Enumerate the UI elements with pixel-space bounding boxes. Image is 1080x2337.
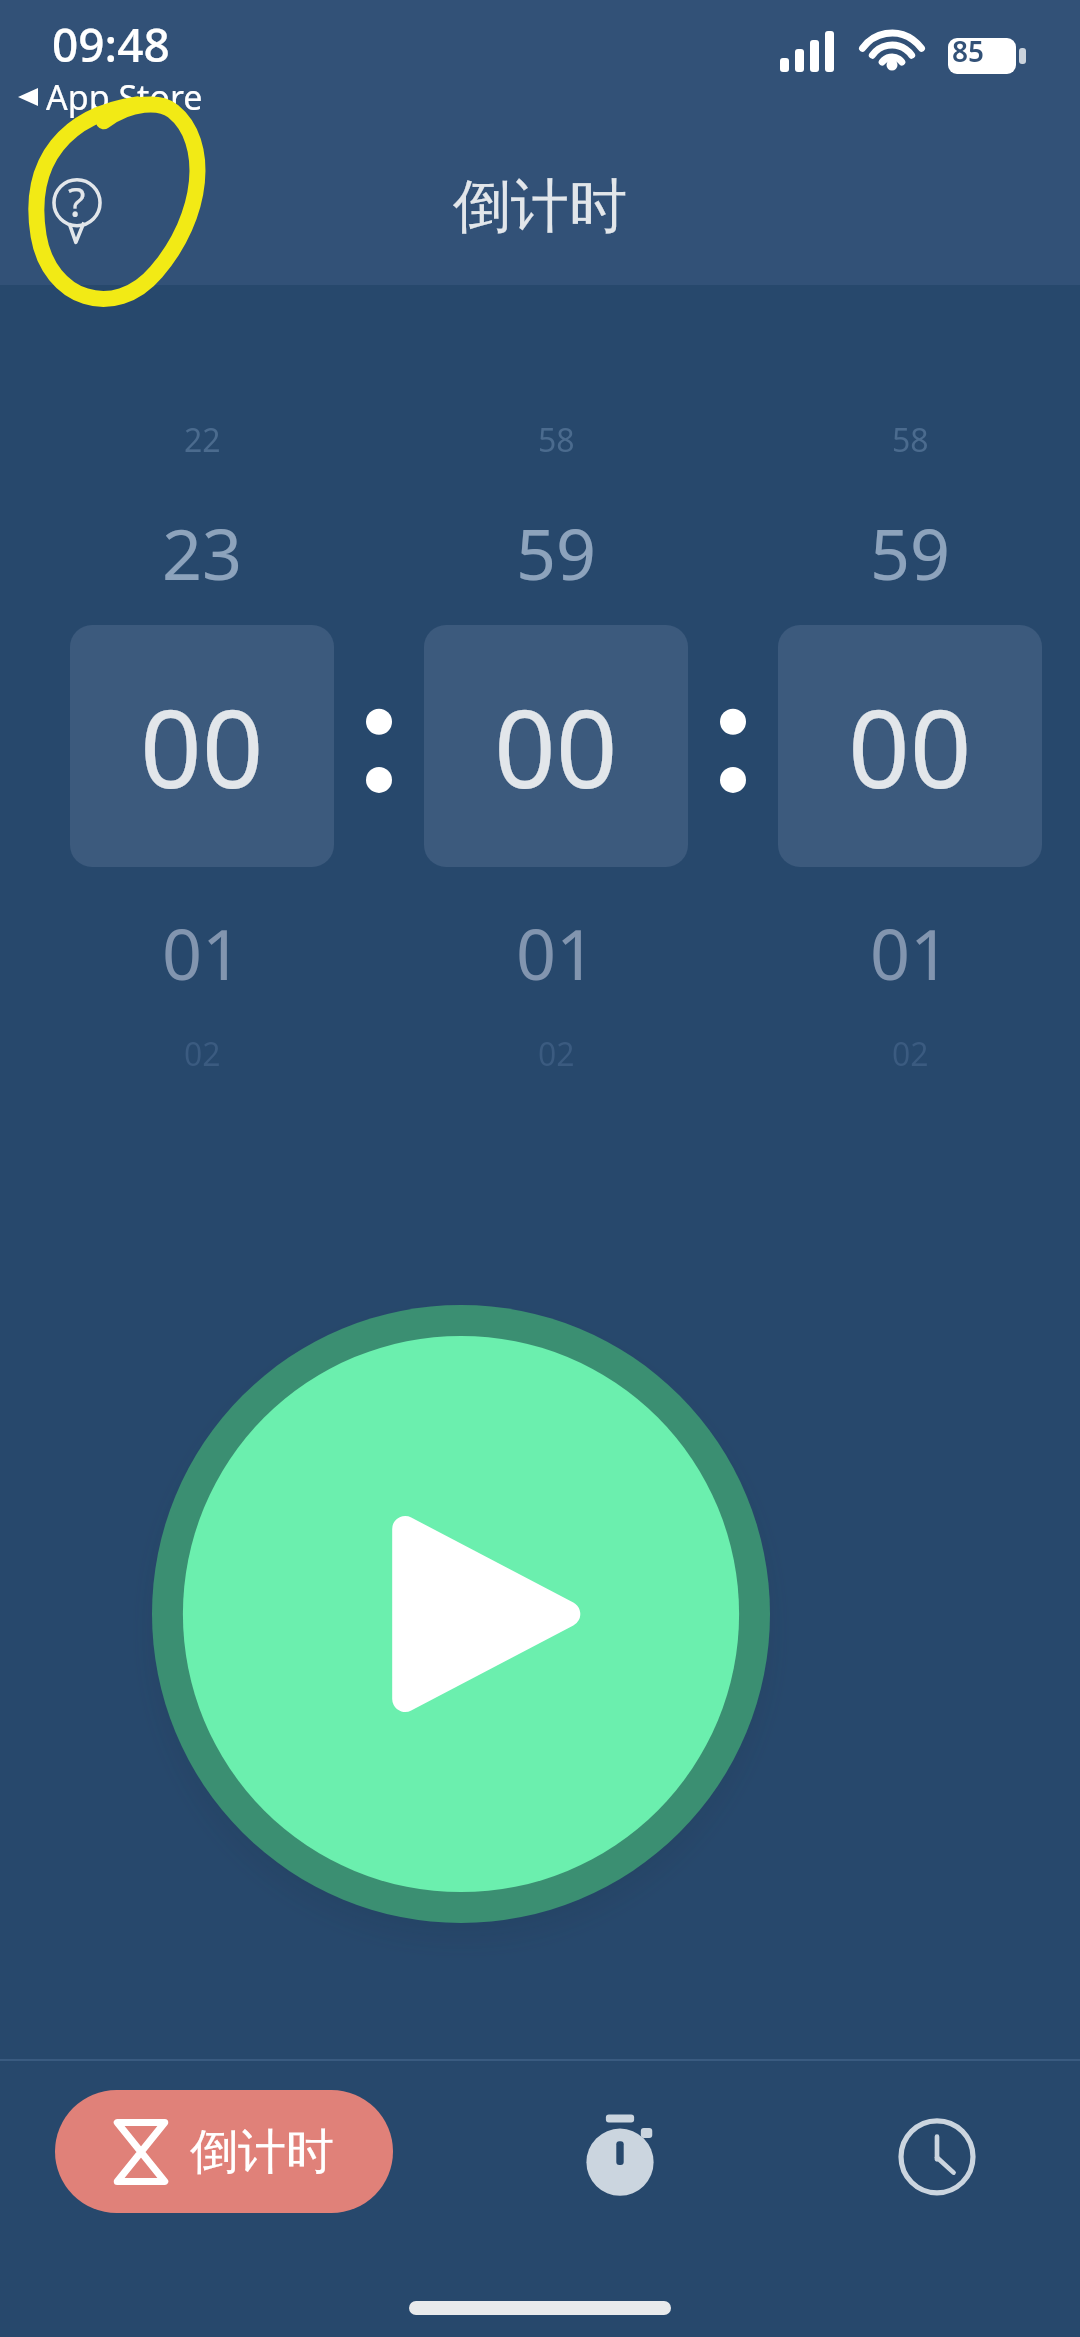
staticText: 02 — [892, 1032, 929, 1076]
button[interactable]: Stopwatch — [560, 2095, 680, 2215]
staticText: 02 — [538, 1032, 575, 1076]
staticText: 00 — [848, 673, 972, 820]
staticText: App Store — [46, 74, 203, 120]
staticText: ? — [68, 174, 86, 228]
staticText: 02 — [184, 1032, 221, 1076]
staticText: 22 — [184, 418, 221, 462]
staticText: 01 — [162, 905, 243, 1000]
button[interactable]: 00 — [424, 625, 688, 867]
staticText: 58 — [538, 418, 575, 462]
button[interactable]: 倒计时 — [55, 2090, 393, 2213]
staticText: 倒计时 — [453, 170, 627, 243]
staticText: 85 — [952, 32, 985, 70]
staticText: 00 — [494, 673, 618, 820]
staticText: 58 — [892, 418, 929, 462]
button[interactable]: Start — [152, 1305, 770, 1923]
staticText: 01 — [516, 905, 597, 1000]
staticText: 01 — [870, 905, 951, 1000]
button[interactable]: 00 — [778, 625, 1042, 867]
staticText: 59 — [516, 505, 597, 600]
staticText: 59 — [870, 505, 951, 600]
button[interactable]: 00 — [70, 625, 334, 867]
button[interactable]: Help — [30, 158, 124, 252]
button[interactable]: Clock — [877, 2092, 997, 2212]
staticText: 00 — [140, 673, 264, 820]
staticText: 09:48 — [52, 13, 170, 76]
staticText: 倒计时 — [190, 2122, 334, 2182]
staticText: 23 — [162, 505, 243, 600]
